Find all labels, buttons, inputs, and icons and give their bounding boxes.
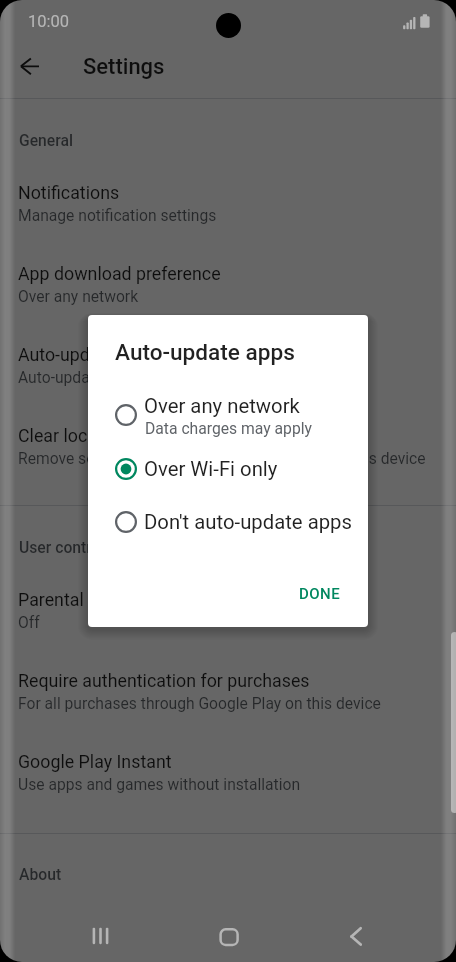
staticText: For all purchases through Google Play on…	[18, 694, 381, 712]
staticText: App download preference	[18, 263, 221, 284]
staticText: About	[19, 865, 62, 883]
staticText: Don't auto-update apps	[144, 510, 352, 534]
button[interactable]: App download preference	[0, 249, 456, 311]
button[interactable]: Over any network	[88, 389, 368, 441]
staticText: Over any network	[18, 287, 139, 305]
button[interactable]: Notifications	[0, 168, 456, 230]
staticText: Over Wi-Fi only	[144, 457, 278, 481]
staticText: Clear local search history	[18, 425, 218, 446]
staticText: User controls	[19, 538, 113, 556]
button[interactable]: Back	[8, 50, 60, 102]
button[interactable]: Auto-update apps	[0, 330, 456, 392]
staticText: Auto-update apps	[18, 344, 159, 365]
button[interactable]: Home	[202, 910, 254, 962]
staticText: Over any network	[144, 394, 300, 418]
button[interactable]: Google Play Instant	[0, 737, 456, 799]
button[interactable]: Over Wi-Fi only	[88, 443, 368, 495]
button[interactable]: Don't auto-update apps	[88, 496, 368, 548]
staticText: Manage notification settings	[18, 206, 217, 224]
staticText: Parental controls	[18, 589, 153, 610]
staticText: Require authentication for purchases	[18, 670, 310, 691]
button[interactable]: DONE	[287, 568, 352, 612]
staticText: Use apps and games without installation	[18, 775, 301, 793]
button[interactable]: Back	[332, 910, 384, 962]
button[interactable]: Clear local search history	[0, 411, 456, 473]
staticText: Off	[18, 613, 40, 631]
staticText: Data charges may apply	[145, 419, 312, 437]
button[interactable]: Parental controls	[0, 575, 456, 637]
staticText: Notifications	[18, 182, 120, 203]
staticText: Settings	[83, 54, 165, 80]
staticText: Auto-update apps	[115, 339, 295, 365]
staticText: Google Play Instant	[18, 751, 172, 772]
staticText: DONE	[299, 585, 341, 603]
button[interactable]: Require authentication for purchases	[0, 656, 456, 718]
staticText: General	[19, 131, 74, 149]
staticText: Auto-update apps over Wi-Fi only	[18, 368, 246, 386]
staticText: 10:00	[28, 12, 70, 31]
staticText: Remove searches you have performed today…	[18, 449, 426, 467]
button[interactable]: Recents	[74, 910, 126, 962]
